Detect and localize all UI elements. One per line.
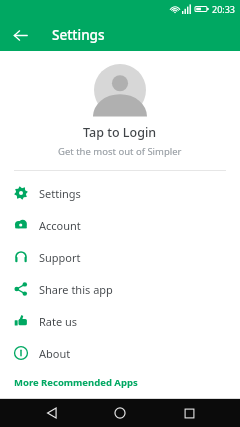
button[interactable]: Share this app	[0, 273, 240, 305]
staticText: Tap to Login	[83, 124, 157, 141]
staticText: More Recommended Apps	[14, 376, 138, 389]
staticText: Support	[39, 250, 81, 265]
staticText: About	[39, 346, 71, 361]
staticText: Get the most out of Simpler	[58, 145, 182, 158]
button[interactable]: About	[0, 337, 240, 369]
button[interactable]: Back	[7, 22, 33, 48]
button[interactable]: Back	[35, 399, 69, 427]
staticText: Account	[39, 218, 81, 233]
button[interactable]: Tap to Login	[0, 64, 240, 158]
staticText: Share this app	[39, 282, 113, 297]
button[interactable]: Settings	[0, 177, 240, 209]
staticText: Settings	[39, 186, 81, 201]
staticText: Settings	[52, 26, 105, 44]
staticText: 20:33	[212, 3, 236, 15]
button[interactable]: Recent apps	[172, 399, 206, 427]
button[interactable]: Account	[0, 209, 240, 241]
button[interactable]: More Recommended Apps	[0, 371, 240, 398]
staticText: Rate us	[39, 314, 78, 329]
button[interactable]: Support	[0, 241, 240, 273]
button[interactable]: Home	[103, 399, 137, 427]
button[interactable]: Rate us	[0, 305, 240, 337]
